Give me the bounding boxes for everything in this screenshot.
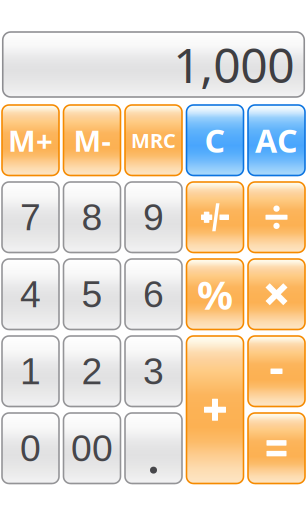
button[interactable]: AC xyxy=(248,105,305,175)
staticText: M+ xyxy=(8,121,53,160)
button[interactable]: 4 xyxy=(2,259,59,329)
button[interactable]: 2 xyxy=(63,336,120,406)
button[interactable] xyxy=(186,182,243,252)
button[interactable]: 0 xyxy=(2,413,59,483)
staticText: 00 xyxy=(71,427,113,469)
staticText: % xyxy=(197,268,233,321)
button[interactable]: 5 xyxy=(63,259,120,329)
button[interactable]: 7 xyxy=(2,182,59,252)
button[interactable] xyxy=(248,182,305,252)
staticText: C xyxy=(204,119,225,161)
button[interactable]: 1 xyxy=(2,336,59,406)
staticText: M- xyxy=(73,121,110,160)
staticText: 4 xyxy=(20,273,41,315)
button[interactable]: % xyxy=(186,259,243,329)
button[interactable]: M- xyxy=(63,105,120,175)
staticText: 1 xyxy=(20,350,41,392)
button[interactable] xyxy=(248,259,305,329)
button[interactable]: 9 xyxy=(125,182,182,252)
button[interactable]: 3 xyxy=(125,336,182,406)
button[interactable]: MRC xyxy=(125,105,182,175)
button[interactable] xyxy=(186,336,243,483)
staticText: 9 xyxy=(143,196,164,238)
button[interactable]: C xyxy=(186,105,243,175)
button[interactable]: 8 xyxy=(63,182,120,252)
staticText: 3 xyxy=(143,350,164,392)
button[interactable]: 6 xyxy=(125,259,182,329)
staticText: MRC xyxy=(131,127,176,154)
staticText: 5 xyxy=(81,273,102,315)
button[interactable] xyxy=(248,413,305,483)
button[interactable]: 00 xyxy=(63,413,120,483)
staticText: AC xyxy=(255,119,298,161)
staticText: 0 xyxy=(20,427,41,469)
staticText: 8 xyxy=(81,196,102,238)
button[interactable]: M+ xyxy=(2,105,59,175)
staticText: 7 xyxy=(20,196,41,238)
staticText: 2 xyxy=(81,350,102,392)
button[interactable] xyxy=(125,413,182,483)
staticText: 1,000 xyxy=(173,33,294,96)
staticText: 6 xyxy=(143,273,164,315)
button[interactable] xyxy=(248,336,305,406)
